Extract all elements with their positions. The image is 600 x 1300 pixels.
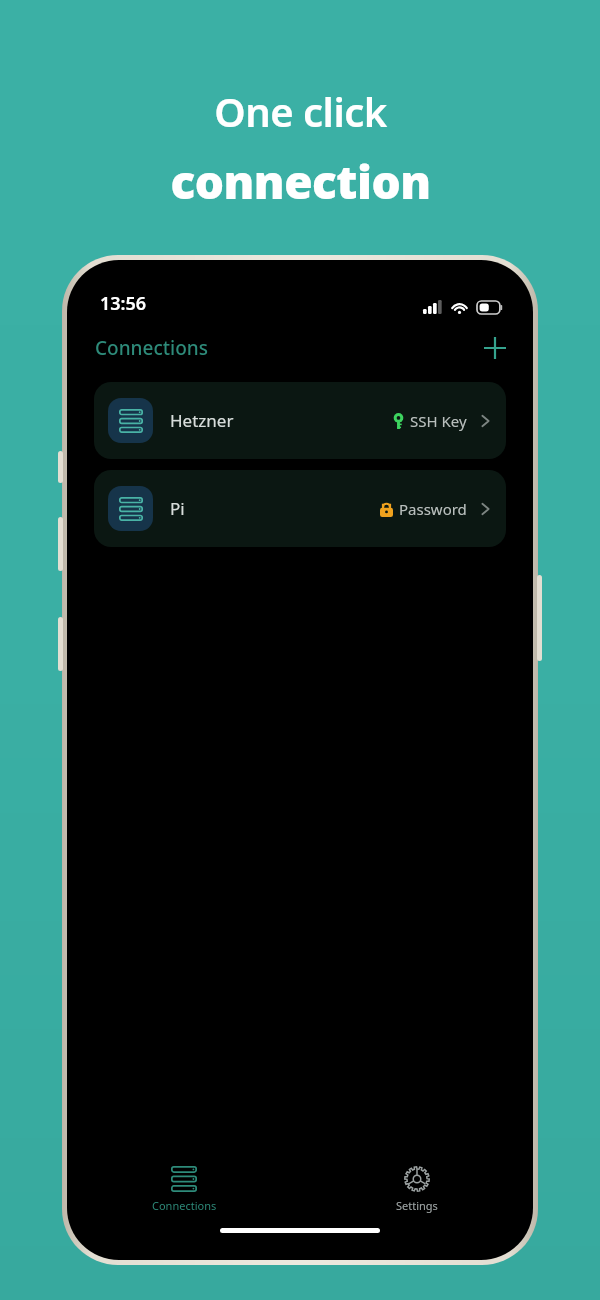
staticText: Password [399,499,467,519]
button[interactable]: Connections [129,1162,239,1217]
button[interactable]: Pi [94,470,506,547]
button[interactable]: Hetzner [94,382,506,459]
button[interactable]: Settings [362,1162,472,1217]
button[interactable]: Add connection [473,326,517,370]
staticText: SSH Key [410,411,467,431]
staticText: Connections [95,335,208,361]
staticText: connection [170,150,431,213]
staticText: Pi [170,497,185,520]
staticText: Hetzner [170,409,234,432]
staticText: One click [214,84,387,138]
staticText: Connections [152,1198,217,1213]
staticText: Settings [396,1198,438,1213]
staticText: 13:56 [100,291,147,316]
